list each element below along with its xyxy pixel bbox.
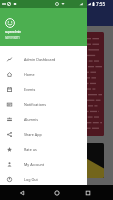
button[interactable]: Recent apps: [84, 189, 92, 197]
button[interactable]: Admin Dashboard: [0, 52, 87, 67]
staticText: Home: [24, 72, 35, 77]
staticText: Alumnis: [24, 117, 39, 122]
staticText: 9491918371: [5, 36, 20, 40]
staticText: Log Out: [24, 177, 38, 182]
button[interactable]: Rate us: [0, 142, 87, 157]
staticText: My Account: [24, 162, 45, 167]
button[interactable]: Events: [0, 82, 87, 97]
button[interactable]: Home: [0, 67, 87, 82]
button[interactable]: My Account: [0, 157, 87, 172]
staticText: Notifications: [24, 102, 46, 107]
staticText: Share App: [24, 132, 42, 137]
button[interactable]: Share App: [0, 127, 87, 142]
button[interactable]: Home: [53, 189, 61, 197]
button[interactable]: Notifications: [0, 97, 87, 112]
button[interactable]: Alumnis: [0, 112, 87, 127]
staticText: superadmin: [5, 30, 22, 34]
staticText: 7:55: [96, 1, 106, 7]
staticText: Admin Dashboard: [24, 57, 56, 62]
button[interactable]: Back: [18, 189, 26, 197]
staticText: Events: [24, 87, 36, 92]
staticText: Rate us: [24, 147, 37, 152]
button[interactable]: Log Out: [0, 172, 87, 187]
